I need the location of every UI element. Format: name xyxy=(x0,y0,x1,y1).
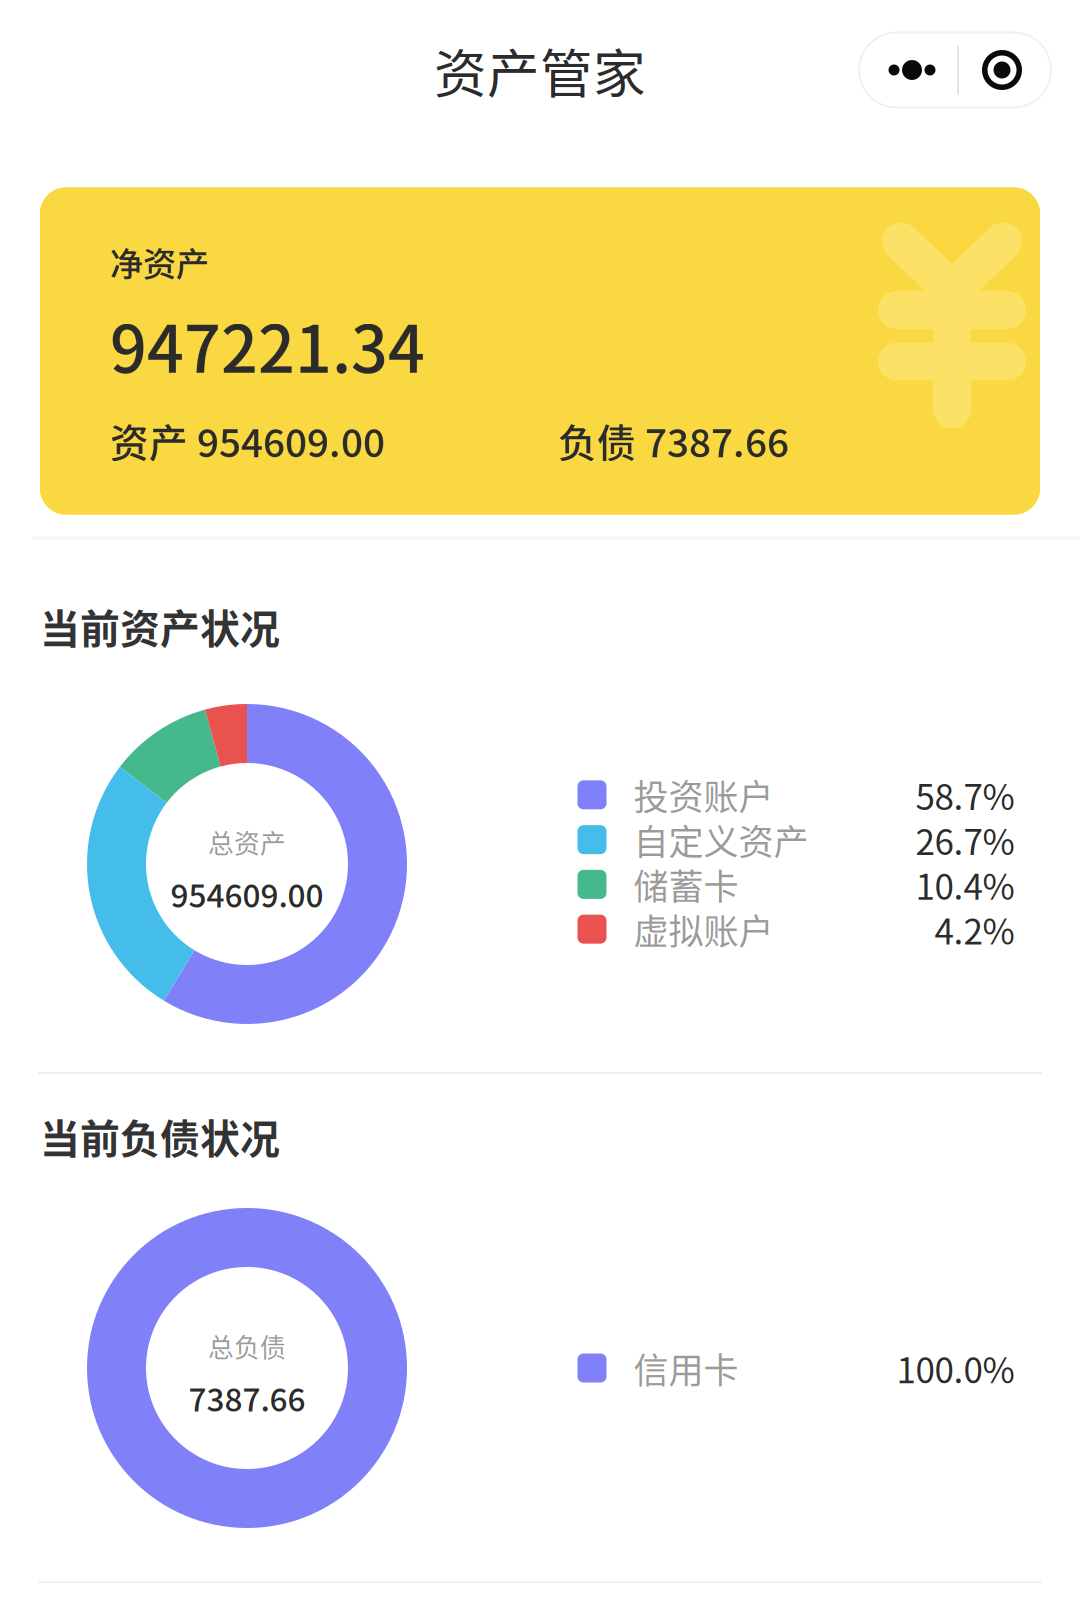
staticText: 947221.34 xyxy=(110,298,425,391)
staticText: 信用卡 xyxy=(633,1343,738,1393)
staticText: 58.7% xyxy=(915,769,1014,820)
staticText: 资产 954609.00 xyxy=(110,412,385,468)
staticText: 总资产 xyxy=(208,823,286,861)
button[interactable]: Total assets 954609.00 xyxy=(87,704,407,1024)
staticText: 当前资产状况 xyxy=(40,597,280,655)
button[interactable]: 虚拟账户 xyxy=(577,904,1014,955)
staticText: 净资产 xyxy=(110,237,209,286)
staticText: 100.0% xyxy=(896,1343,1014,1393)
staticText: 总负债 xyxy=(208,1327,286,1365)
staticText: 10.4% xyxy=(915,859,1014,910)
staticText: 7387.66 xyxy=(188,1375,305,1421)
button[interactable]: Total liabilities 7387.66 xyxy=(87,1208,407,1528)
button[interactable]: 净资产 xyxy=(40,187,1040,514)
staticText: 储蓄卡 xyxy=(633,859,738,910)
staticText: 投资账户 xyxy=(633,769,773,820)
staticText: 4.2% xyxy=(934,904,1014,955)
staticText: 当前负债状况 xyxy=(40,1107,280,1165)
staticText: 负债 7387.66 xyxy=(558,412,789,468)
button[interactable]: Menu and Close xyxy=(859,32,1051,107)
button[interactable]: 自定义资产 xyxy=(577,814,1014,865)
staticText: 虚拟账户 xyxy=(633,904,773,955)
staticText: 26.7% xyxy=(915,814,1014,865)
staticText: 自定义资产 xyxy=(633,814,808,865)
button[interactable]: 储蓄卡 xyxy=(577,859,1014,910)
staticText: 资产管家 xyxy=(434,32,646,108)
staticText: 954609.00 xyxy=(170,871,323,917)
button[interactable]: 投资账户 xyxy=(577,769,1014,820)
button[interactable]: 信用卡 xyxy=(577,1343,1014,1393)
